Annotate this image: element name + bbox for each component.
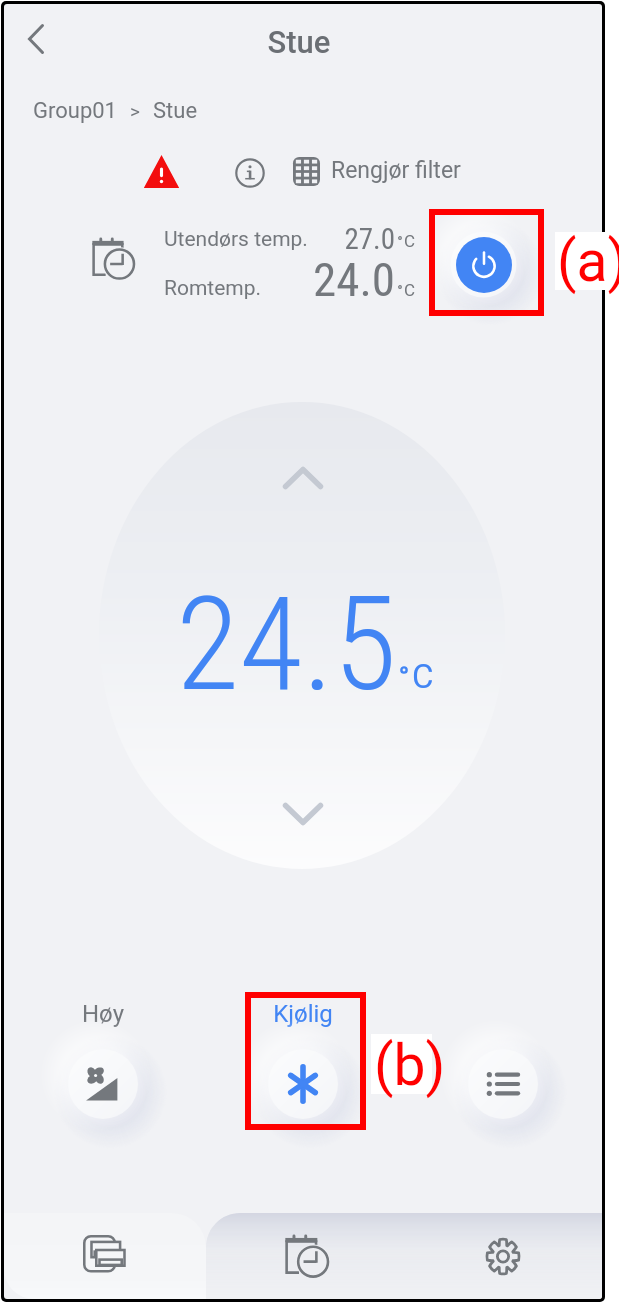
staticText: > (130, 100, 140, 122)
staticText: 24.0 (300, 252, 395, 307)
button[interactable]: Rengjør filter (293, 157, 461, 186)
button[interactable]: Units (4, 1213, 206, 1299)
staticText: 24.5 (176, 568, 397, 720)
staticText: Romtemp. (164, 276, 262, 301)
staticText: C (412, 657, 434, 696)
staticText: Kjølig (249, 1000, 357, 1028)
staticText: C (404, 280, 416, 300)
staticText: 27.0 (330, 222, 395, 256)
staticText: Høy (49, 1000, 157, 1028)
button[interactable]: Options (449, 984, 557, 1138)
staticText: (a) (557, 228, 619, 295)
button[interactable]: Information (235, 158, 265, 188)
staticText: Stue (153, 98, 198, 124)
button[interactable]: Fan speed (49, 984, 157, 1138)
staticText: Utendørs temp. (164, 227, 308, 252)
button[interactable]: Back (13, 16, 59, 62)
staticText: Group01 (33, 98, 117, 124)
staticText: Rengjør filter (331, 157, 461, 184)
staticText: (b) (374, 1032, 446, 1099)
button[interactable]: Schedule (263, 1213, 351, 1299)
button[interactable]: Settings (459, 1213, 547, 1299)
staticText: C (404, 231, 416, 251)
button[interactable]: Increase temperature (274, 454, 332, 502)
button[interactable]: Mode (249, 984, 357, 1138)
staticText: Stue (4, 24, 598, 60)
button[interactable]: Power (430, 211, 537, 318)
button[interactable]: Decrease temperature (274, 790, 332, 838)
